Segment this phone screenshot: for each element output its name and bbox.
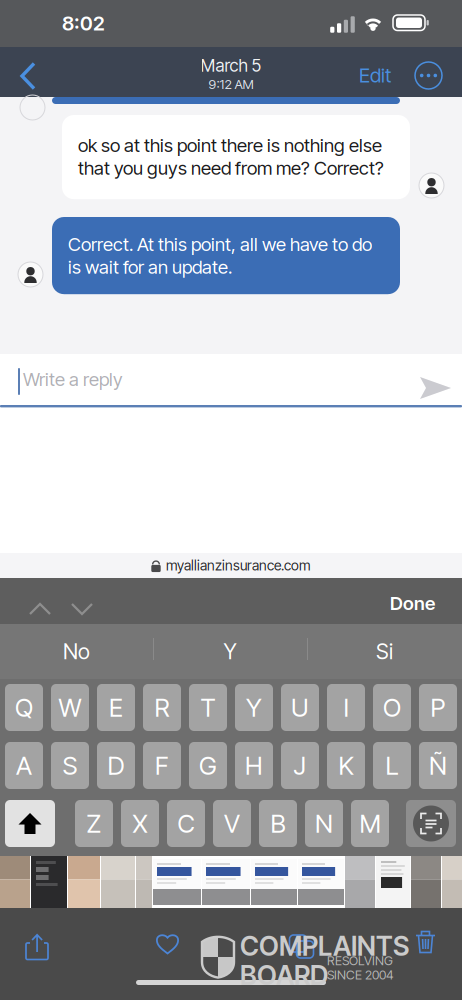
button[interactable]: Z xyxy=(75,800,113,847)
staticText: BOARD xyxy=(240,959,328,992)
button[interactable]: Back xyxy=(12,58,50,94)
staticText: ok so at this point there is nothing els… xyxy=(78,134,384,179)
staticText: U xyxy=(291,692,309,723)
staticText: W xyxy=(58,692,81,723)
staticText: R xyxy=(154,692,169,723)
button[interactable]: Tabs xyxy=(278,924,318,963)
button[interactable]: P xyxy=(419,684,457,731)
staticText: A xyxy=(16,750,32,781)
button[interactable]: Photo xyxy=(442,856,462,908)
staticText: Q xyxy=(15,692,33,723)
staticText: Write a reply xyxy=(23,368,123,391)
staticText: Z xyxy=(86,808,101,839)
staticText: L xyxy=(385,750,398,781)
button[interactable]: Photo xyxy=(202,856,250,908)
button[interactable]: Photo xyxy=(298,856,344,908)
staticText: I xyxy=(343,692,348,723)
staticText: X xyxy=(132,808,147,839)
button[interactable]: Ñ xyxy=(419,742,457,789)
staticText: C xyxy=(177,808,194,839)
button[interactable]: Edit xyxy=(355,60,395,90)
button[interactable]: C xyxy=(167,800,205,847)
button[interactable]: Send xyxy=(414,371,457,405)
button[interactable]: Photo xyxy=(101,856,135,908)
button[interactable]: A xyxy=(5,742,43,789)
button[interactable]: B xyxy=(259,800,297,847)
staticText: B xyxy=(270,808,285,839)
button[interactable]: Y xyxy=(235,684,273,731)
staticText: Correct. At this point, all we have to d… xyxy=(68,233,372,278)
button[interactable]: Photo xyxy=(376,856,410,908)
staticText: RESOLVING xyxy=(327,953,393,968)
staticText: K xyxy=(338,750,353,781)
staticText: O xyxy=(383,692,401,723)
staticText: F xyxy=(155,750,169,781)
staticText: N xyxy=(315,808,333,839)
button[interactable]: Done xyxy=(386,590,439,617)
staticText: No xyxy=(63,639,90,664)
button[interactable]: Share xyxy=(18,922,56,964)
staticText: 9:12 AM xyxy=(208,76,253,92)
button[interactable]: K xyxy=(327,742,365,789)
button[interactable]: Photo xyxy=(251,856,297,908)
staticText: G xyxy=(199,750,217,781)
staticText: S xyxy=(62,750,77,781)
staticText: Y xyxy=(246,692,262,723)
staticText: J xyxy=(293,750,306,781)
staticText: D xyxy=(107,750,124,781)
button[interactable]: V xyxy=(213,800,251,847)
staticText: Si xyxy=(376,639,393,664)
staticText: 8:02 xyxy=(62,11,105,35)
button[interactable]: F xyxy=(143,742,181,789)
button[interactable]: Scan text xyxy=(406,800,456,847)
button[interactable]: Photo xyxy=(68,856,100,908)
button[interactable]: Photo xyxy=(345,856,375,908)
button[interactable]: X xyxy=(121,800,159,847)
button[interactable]: Photo xyxy=(0,856,30,908)
staticText: T xyxy=(200,692,215,723)
button[interactable]: Photo xyxy=(153,856,201,908)
button[interactable]: J xyxy=(281,742,319,789)
staticText: M xyxy=(359,808,380,839)
button[interactable]: Photo xyxy=(136,856,152,908)
button[interactable]: D xyxy=(97,742,135,789)
staticText: Done xyxy=(390,592,435,615)
button[interactable]: U xyxy=(281,684,319,731)
button[interactable]: Delete xyxy=(408,922,443,961)
staticText: COMPLAINTS xyxy=(240,930,409,962)
button[interactable]: H xyxy=(235,742,273,789)
button[interactable]: I xyxy=(327,684,365,731)
button[interactable]: Shift xyxy=(5,800,55,847)
staticText: Y xyxy=(223,639,236,664)
button[interactable]: Q xyxy=(5,684,43,731)
staticText: Ñ xyxy=(429,750,447,781)
button[interactable]: E xyxy=(97,684,135,731)
button[interactable]: O xyxy=(373,684,411,731)
button[interactable]: R xyxy=(143,684,181,731)
button[interactable]: No xyxy=(0,624,153,679)
button[interactable]: Photo xyxy=(411,856,441,908)
staticText: V xyxy=(224,808,240,839)
button[interactable]: Previous field xyxy=(22,596,58,623)
button[interactable]: S xyxy=(51,742,89,789)
button[interactable]: Next field xyxy=(64,596,100,623)
button[interactable]: W xyxy=(51,684,89,731)
button[interactable]: Photo xyxy=(31,856,67,908)
button[interactable]: L xyxy=(373,742,411,789)
staticText: myallianzinsurance.com xyxy=(166,557,311,574)
button[interactable]: Si xyxy=(307,624,462,679)
staticText: P xyxy=(430,692,445,723)
button[interactable]: T xyxy=(189,684,227,731)
staticText: SINCE 2004 xyxy=(327,967,394,983)
button[interactable]: More options xyxy=(413,60,444,91)
staticText: Edit xyxy=(359,63,391,87)
staticText: March 5 xyxy=(200,55,261,76)
button[interactable]: Bookmarks xyxy=(148,925,187,962)
staticText: E xyxy=(109,692,123,723)
button[interactable]: G xyxy=(189,742,227,789)
button[interactable]: Y xyxy=(153,624,307,679)
staticText: H xyxy=(245,750,263,781)
button[interactable]: N xyxy=(305,800,343,847)
button[interactable]: M xyxy=(351,800,389,847)
